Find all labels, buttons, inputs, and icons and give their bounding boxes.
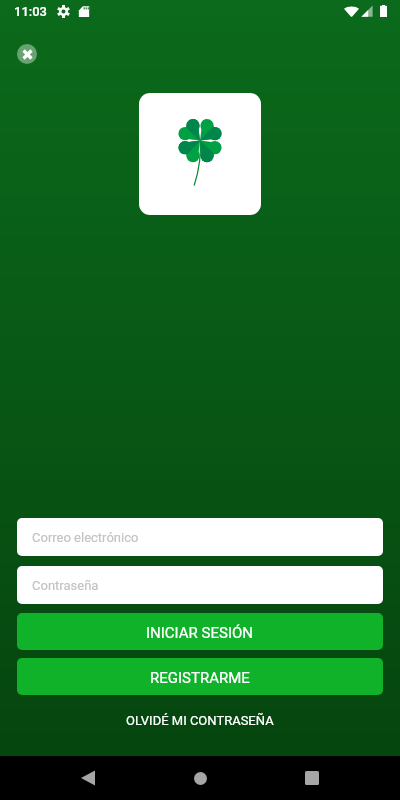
button[interactable]: Recientes	[290, 756, 334, 800]
staticText: OLVIDÉ MI CONTRASEÑA	[126, 713, 274, 728]
button[interactable]: Inicio	[178, 756, 222, 800]
staticText: REGISTRARME	[150, 669, 250, 687]
button[interactable]: Cerrar	[17, 44, 37, 64]
staticText: Contraseña	[32, 578, 99, 593]
button[interactable]: REGISTRARME	[17, 658, 383, 695]
button[interactable]: OLVIDÉ MI CONTRASEÑA	[17, 695, 383, 745]
staticText: INICIAR SESIÓN	[146, 624, 254, 642]
button[interactable]: Atrás	[66, 756, 110, 800]
button[interactable]: Correo electrónico	[17, 518, 383, 556]
staticText: Correo electrónico	[32, 530, 139, 545]
button[interactable]: Contraseña	[17, 566, 383, 604]
button[interactable]: INICIAR SESIÓN	[17, 613, 383, 650]
staticText: 11:03	[14, 4, 48, 19]
